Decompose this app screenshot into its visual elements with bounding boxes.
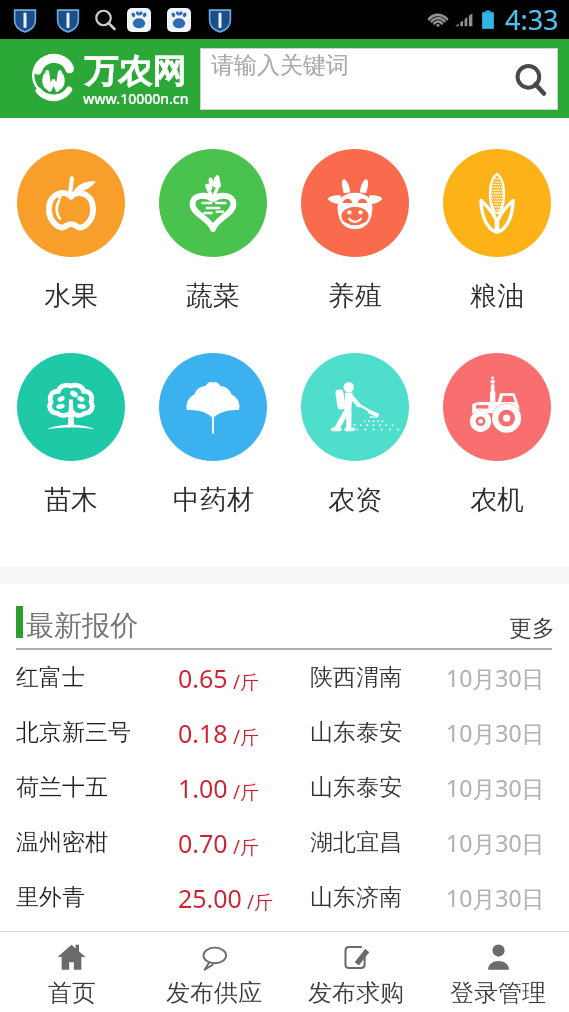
staticText: 10月30日 — [446, 827, 545, 858]
staticText: 山东济南 — [310, 883, 402, 912]
staticText: 红富士 — [16, 663, 85, 692]
button[interactable]: 请输入关键词 — [200, 48, 558, 110]
button[interactable]: 北京新三号 — [0, 705, 569, 760]
staticText: 0.65 — [178, 661, 228, 695]
button[interactable]: 农资 — [301, 353, 409, 517]
staticText: 首页 — [48, 978, 96, 1008]
button[interactable]: 发布供应 — [143, 932, 285, 1012]
staticText: /斤 — [228, 669, 260, 695]
staticText: 温州密柑 — [16, 828, 108, 857]
staticText: 陕西渭南 — [310, 663, 402, 692]
button[interactable]: 首页 — [0, 932, 143, 1012]
button[interactable]: 红富士 — [0, 650, 569, 705]
button[interactable]: 发布求购 — [285, 932, 427, 1012]
staticText: /斤 — [228, 779, 260, 805]
staticText: 10月30日 — [446, 772, 545, 803]
button[interactable]: 养殖 — [301, 149, 409, 313]
button[interactable]: 更多 — [509, 614, 555, 643]
staticText: 湖北宜昌 — [310, 828, 402, 857]
staticText: 请输入关键词 — [211, 51, 349, 80]
staticText: 北京新三号 — [16, 718, 131, 747]
staticText: 最新报价 — [26, 608, 138, 643]
staticText: 10月30日 — [446, 717, 545, 748]
staticText: 10月30日 — [446, 662, 545, 693]
staticText: 1.00 — [178, 771, 228, 805]
staticText: 0.70 — [178, 826, 228, 860]
staticText: www.10000n.cn — [83, 89, 189, 108]
staticText: 农资 — [328, 483, 382, 517]
button[interactable]: 中药材 — [159, 353, 267, 517]
staticText: 0.18 — [178, 716, 228, 750]
other: 发布供应 — [200, 943, 229, 972]
staticText: 荷兰十五 — [16, 773, 108, 802]
staticText: /斤 — [228, 724, 260, 750]
other: 发布求购 — [342, 943, 371, 972]
staticText: 发布供应 — [166, 978, 262, 1008]
other: 首页 — [57, 943, 86, 972]
staticText: 里外青 — [16, 883, 85, 912]
staticText: 发布求购 — [308, 978, 404, 1008]
staticText: 万农网 — [84, 50, 186, 93]
staticText: 登录管理 — [450, 978, 546, 1008]
other: Search — [516, 65, 547, 96]
button[interactable]: 蔬菜 — [159, 149, 267, 313]
staticText: 养殖 — [328, 279, 382, 313]
staticText: 苗木 — [44, 483, 98, 517]
staticText: 山东泰安 — [310, 718, 402, 747]
staticText: 更多 — [509, 614, 555, 643]
staticText: 4:33 — [505, 1, 559, 38]
staticText: 农机 — [470, 483, 524, 517]
staticText: 粮油 — [470, 279, 524, 313]
staticText: 山东泰安 — [310, 773, 402, 802]
button[interactable]: 苗木 — [17, 353, 125, 517]
staticText: 蔬菜 — [186, 279, 240, 313]
staticText: 25.00 — [178, 881, 242, 915]
button[interactable]: 农机 — [443, 353, 551, 517]
button[interactable]: 里外青 — [0, 870, 569, 925]
staticText: /斤 — [228, 834, 260, 860]
button[interactable]: 水果 — [17, 149, 125, 313]
button[interactable]: 登录管理 — [427, 932, 569, 1012]
staticText: 10月30日 — [446, 882, 545, 913]
button[interactable]: 粮油 — [443, 149, 551, 313]
staticText: 中药材 — [173, 483, 254, 517]
staticText: /斤 — [242, 889, 274, 915]
button[interactable]: 温州密柑 — [0, 815, 569, 870]
other: 登录管理 — [484, 943, 513, 972]
staticText: 水果 — [44, 279, 98, 313]
button[interactable]: 荷兰十五 — [0, 760, 569, 815]
